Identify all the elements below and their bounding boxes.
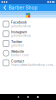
button[interactable]: Website bbox=[0, 48, 56, 58]
button[interactable]: Facebook bbox=[0, 19, 56, 29]
button[interactable]: Twitter bbox=[0, 39, 56, 48]
staticText: @barber bbox=[11, 44, 24, 47]
staticText: Instagram bbox=[11, 30, 27, 34]
staticText: Contact bbox=[11, 59, 24, 63]
staticText: barber.com bbox=[11, 54, 28, 57]
staticText: Barber Shop bbox=[8, 5, 37, 11]
staticText: @barbershop bbox=[11, 24, 31, 28]
button[interactable]: Recents bbox=[37, 96, 39, 98]
staticText: https://www.barbershop.com/contact bbox=[11, 63, 56, 67]
button[interactable]: Back bbox=[1, 4, 8, 11]
button[interactable]: Contact bbox=[0, 58, 56, 68]
button[interactable]: Back bbox=[17, 96, 19, 98]
staticText: Twitter bbox=[11, 40, 22, 44]
staticText: Facebook bbox=[11, 20, 27, 24]
staticText: @barbershop bbox=[11, 34, 31, 38]
button[interactable]: Instagram bbox=[0, 29, 56, 39]
staticText: Website bbox=[11, 49, 24, 54]
